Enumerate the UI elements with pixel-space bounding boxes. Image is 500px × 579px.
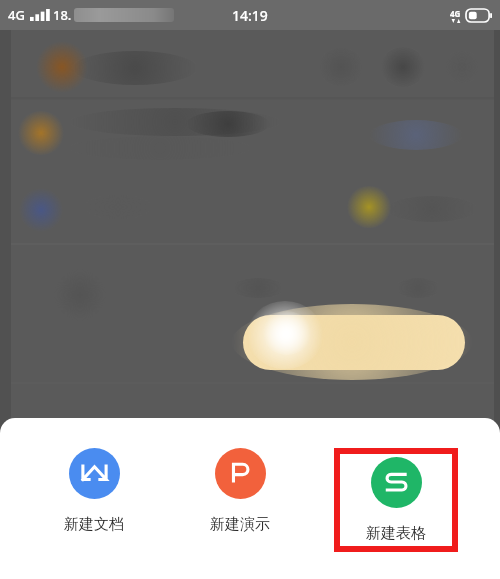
staticText: 新建演示 <box>210 515 270 534</box>
button[interactable]: 新建文档 <box>42 448 146 534</box>
staticText: 18. <box>53 6 72 24</box>
staticText: 4G <box>8 6 25 24</box>
button[interactable]: 新建表格 <box>344 457 448 543</box>
staticText: 4G <box>450 8 461 19</box>
staticText: 新建表格 <box>366 524 426 543</box>
button[interactable]: 新建演示 <box>188 448 292 534</box>
staticText: 14:19 <box>232 6 268 25</box>
staticText: 新建文档 <box>64 515 124 534</box>
